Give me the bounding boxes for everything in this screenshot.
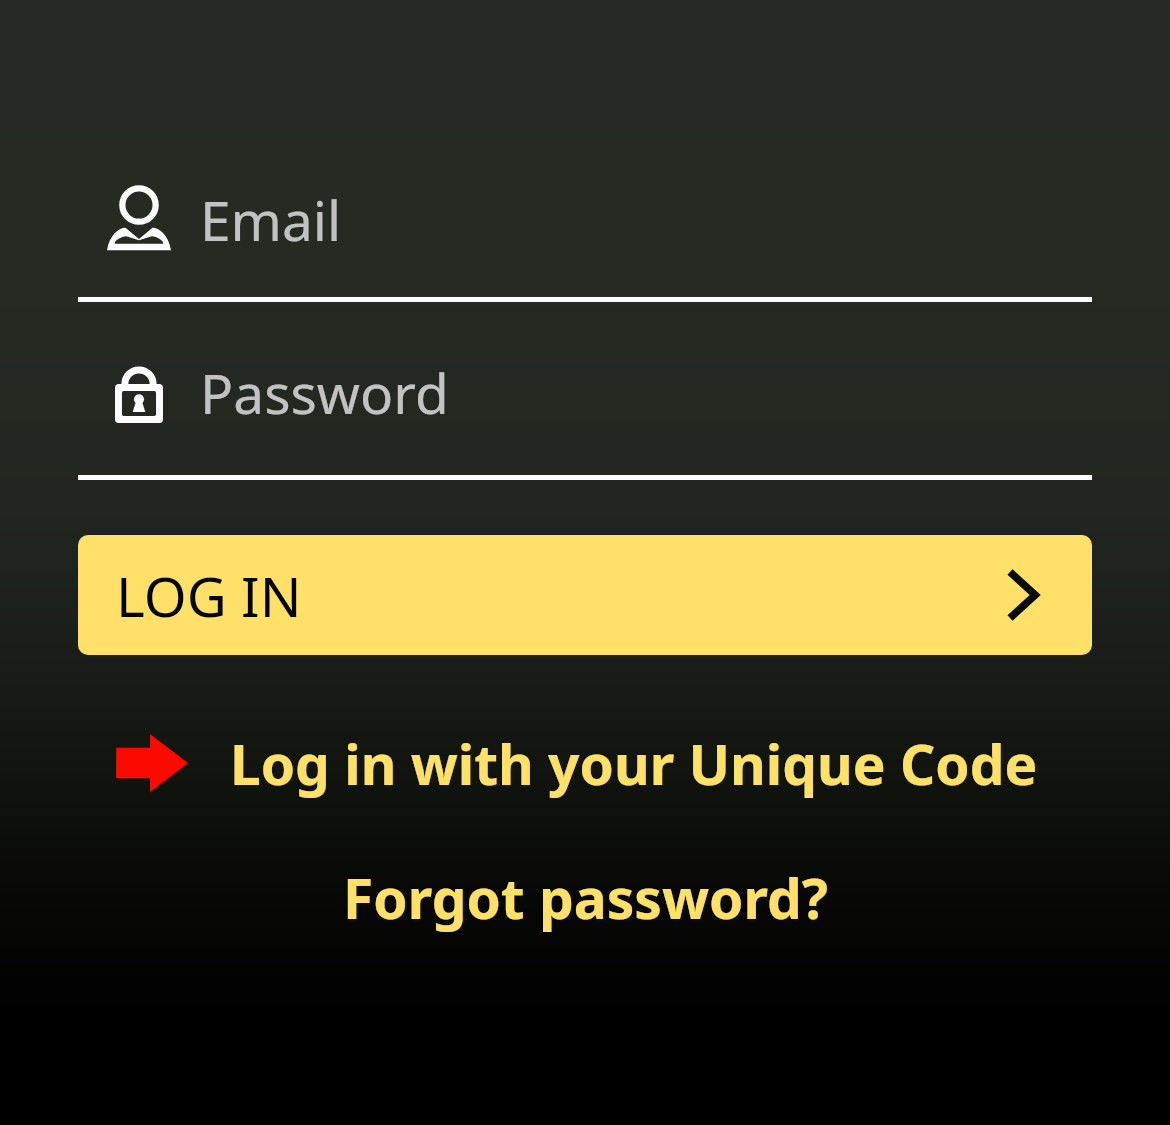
staticText: LOG IN	[116, 558, 302, 633]
button[interactable]: LOG IN	[78, 535, 1092, 655]
button[interactable]: Log in with your Unique Code	[112, 717, 1038, 809]
button[interactable]: Email	[78, 176, 1092, 262]
other: Log in with your Unique Code	[112, 734, 188, 792]
staticText: Password	[200, 355, 449, 430]
staticText: Forgot password?	[343, 860, 828, 935]
button[interactable]: Password	[78, 349, 1092, 435]
staticText: Log in with your Unique Code	[230, 726, 1038, 801]
button[interactable]: Forgot password?	[0, 853, 1170, 941]
staticText: Email	[200, 182, 342, 257]
